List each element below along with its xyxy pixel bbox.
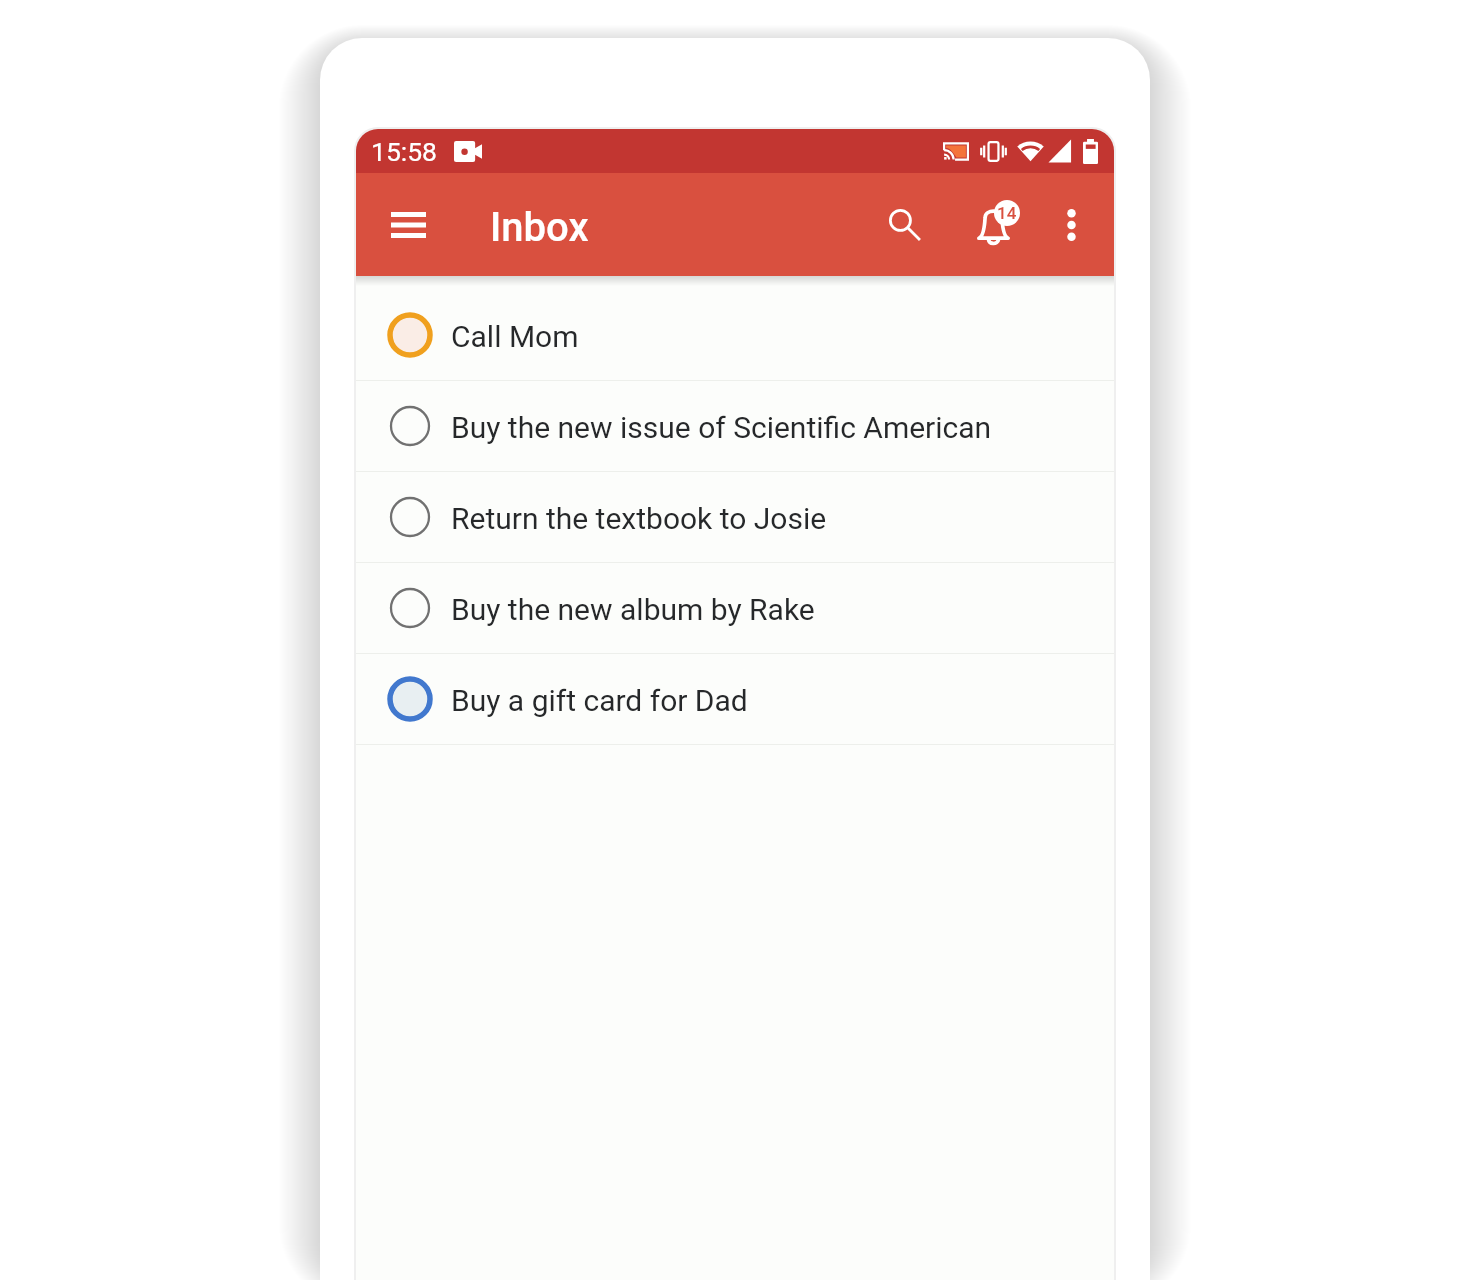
staticText: 14 — [997, 203, 1017, 223]
button[interactable]: Search — [873, 193, 937, 257]
button[interactable]: Buy the new album by Rake — [356, 563, 1114, 653]
staticText: Buy a gift card for Dad — [451, 683, 748, 718]
button[interactable]: Buy the new issue of Scientific American — [356, 381, 1114, 471]
staticText: Buy the new issue of Scientific American — [451, 410, 992, 445]
button[interactable]: Open navigation menu — [380, 196, 437, 253]
button[interactable]: Notifications, 14 unread — [969, 193, 1033, 257]
staticText: Return the textbook to Josie — [451, 501, 827, 536]
staticText: Inbox — [490, 204, 589, 251]
button[interactable]: Buy a gift card for Dad — [356, 654, 1114, 744]
staticText: Buy the new album by Rake — [451, 592, 815, 627]
staticText: Call Mom — [451, 319, 579, 354]
staticText: 15:58 — [371, 136, 437, 167]
button[interactable]: More options — [1043, 197, 1099, 253]
button[interactable]: Return the textbook to Josie — [356, 472, 1114, 562]
button[interactable]: Call Mom — [356, 290, 1114, 380]
